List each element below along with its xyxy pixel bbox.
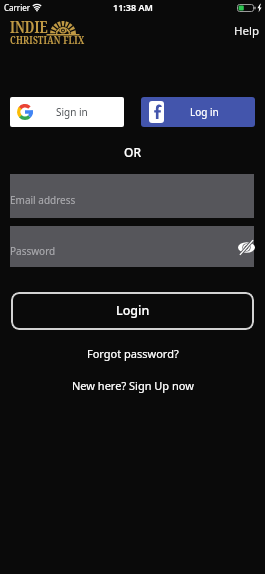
staticText: 11:38 AM: [113, 1, 153, 13]
staticText: Password: [10, 244, 56, 258]
staticText: OR: [124, 144, 141, 160]
button[interactable]: Password: [10, 226, 254, 267]
button[interactable]: Log in: [141, 97, 255, 127]
staticText: Forgot password?: [87, 346, 179, 361]
button[interactable]: Sign in: [10, 97, 124, 127]
button[interactable]: New here? Sign Up now: [70, 376, 196, 395]
staticText: Log in: [190, 105, 219, 119]
button[interactable]: Forgot password?: [85, 344, 181, 363]
staticText: Carrier: [4, 2, 31, 13]
staticText: Login: [116, 302, 150, 319]
button[interactable]: Help: [230, 19, 264, 43]
staticText: Help: [234, 23, 260, 39]
staticText: INDIE: [10, 17, 48, 38]
button[interactable]: [237, 239, 256, 256]
button[interactable]: Login: [11, 292, 254, 330]
staticText: Sign in: [56, 105, 88, 119]
staticText: Email address: [10, 193, 76, 207]
staticText: CHRISTIAN FLIX: [10, 33, 85, 47]
staticText: New here? Sign Up now: [72, 378, 194, 393]
button[interactable]: INDIE: [10, 19, 85, 46]
button[interactable]: Email address: [10, 174, 254, 218]
